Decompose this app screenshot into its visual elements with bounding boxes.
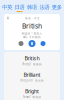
button[interactable]: British xyxy=(4,52,60,68)
staticText: Brilliant xyxy=(23,71,40,78)
staticText: 更多 xyxy=(52,4,62,11)
staticText: /braɪt/ 明亮的 xyxy=(22,95,41,99)
button[interactable]: Bright xyxy=(4,85,60,100)
button[interactable]: Brilliant xyxy=(4,68,60,85)
staticText: 英国的 • 英国人 xyxy=(21,32,42,35)
staticText: 英语 - 中文 xyxy=(25,17,40,20)
staticText: 法语 xyxy=(39,4,49,11)
staticText: A xyxy=(7,17,9,20)
staticText: 日语 xyxy=(15,4,25,11)
staticText: 中英 xyxy=(2,4,12,11)
staticText: /ˈbrɪljənt/ 杰出的 xyxy=(20,79,44,82)
button[interactable]: 日语 xyxy=(13,4,26,12)
staticText: 韩语 xyxy=(27,4,37,11)
button[interactable]: 法语 xyxy=(38,4,51,12)
button[interactable]: 更多 xyxy=(51,4,63,12)
staticText: adj. 不列颠的 xyxy=(23,35,41,39)
button[interactable]: 中英 xyxy=(1,4,13,12)
staticText: /ˈbrɪtɪʃ/ 英国的 xyxy=(22,62,42,66)
staticText: British xyxy=(24,55,39,62)
staticText: British xyxy=(22,21,42,30)
staticText: Bright xyxy=(25,87,39,95)
button[interactable]: 韩语 xyxy=(26,4,38,12)
